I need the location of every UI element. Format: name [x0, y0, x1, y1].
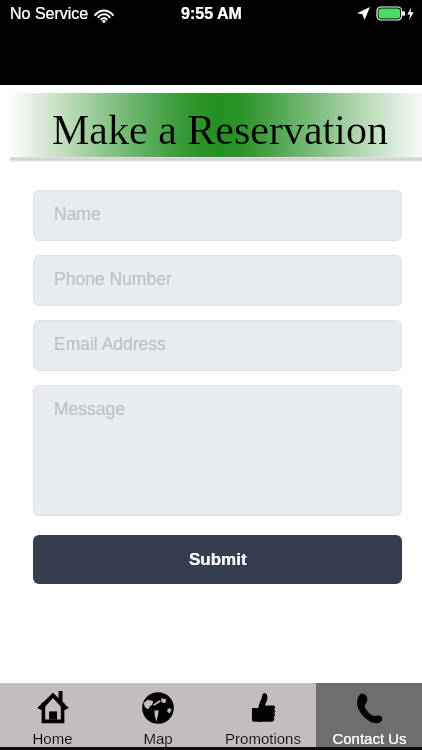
staticText: Make a Reservation: [52, 107, 388, 154]
button[interactable]: Map: [105, 683, 210, 750]
button[interactable]: Contact Us: [316, 683, 422, 750]
button[interactable]: Name: [33, 190, 402, 241]
staticText: Promotions: [225, 730, 301, 747]
staticText: Email Address: [54, 334, 166, 354]
button[interactable]: Home: [0, 683, 105, 750]
staticText: Contact Us: [332, 730, 407, 747]
staticText: Map: [143, 730, 173, 747]
staticText: Message: [54, 399, 126, 419]
staticText: Home: [32, 730, 73, 747]
button[interactable]: Message: [33, 385, 402, 516]
staticText: Name: [54, 204, 101, 224]
staticText: Phone Number: [54, 269, 172, 289]
button[interactable]: Email Address: [33, 320, 402, 371]
button[interactable]: Phone Number: [33, 255, 402, 306]
button[interactable]: Submit: [33, 535, 402, 584]
staticText: Submit: [189, 550, 247, 569]
staticText: 9:55 AM: [181, 5, 242, 23]
button[interactable]: Promotions: [210, 683, 316, 750]
staticText: No Service: [10, 5, 89, 23]
